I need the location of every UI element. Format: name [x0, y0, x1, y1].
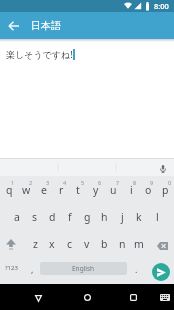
button[interactable]: [153, 237, 171, 255]
button[interactable]: p: [156, 181, 174, 199]
button[interactable]: h: [95, 208, 113, 226]
staticText: i: [130, 183, 133, 197]
button[interactable]: d: [43, 208, 61, 226]
button[interactable]: o: [139, 181, 157, 199]
staticText: ?123: [5, 264, 18, 272]
button[interactable]: u: [104, 181, 122, 199]
staticText: s: [32, 210, 38, 224]
staticText: 5: [81, 179, 85, 186]
staticText: 4: [63, 179, 67, 186]
staticText: .: [135, 263, 138, 275]
staticText: k: [136, 210, 142, 224]
button[interactable]: r: [52, 181, 70, 199]
button[interactable]: f: [61, 208, 79, 226]
button[interactable]: 9: [143, 173, 161, 191]
staticText: e: [41, 183, 47, 197]
button[interactable]: a: [8, 208, 26, 226]
staticText: l: [156, 210, 159, 224]
button[interactable]: [124, 288, 142, 306]
button[interactable]: [152, 263, 170, 281]
button[interactable]: t: [69, 181, 87, 199]
staticText: w: [22, 183, 31, 197]
staticText: 6: [98, 179, 102, 186]
staticText: j: [121, 210, 124, 224]
staticText: q: [6, 183, 13, 197]
staticText: d: [49, 210, 56, 224]
button[interactable]: k: [130, 208, 148, 226]
button[interactable]: c: [61, 235, 79, 253]
button[interactable]: [78, 288, 96, 306]
button[interactable]: q: [0, 181, 18, 199]
staticText: p: [162, 183, 169, 197]
button[interactable]: b: [95, 235, 113, 253]
staticText: u: [110, 183, 117, 197]
staticText: m: [134, 237, 144, 251]
staticText: 楽しそうですね!: [6, 48, 73, 60]
staticText: x: [49, 237, 55, 251]
button[interactable]: 8: [126, 173, 144, 191]
staticText: r: [59, 183, 64, 197]
staticText: o: [145, 183, 152, 197]
staticText: 7: [116, 179, 120, 186]
button[interactable]: i: [122, 181, 140, 199]
staticText: g: [84, 210, 91, 224]
staticText: 9: [150, 179, 154, 186]
staticText: 3: [46, 179, 50, 186]
button[interactable]: l: [148, 208, 166, 226]
button[interactable]: e: [35, 181, 53, 199]
staticText: c: [67, 237, 73, 251]
staticText: 1: [11, 179, 15, 186]
button[interactable]: 2: [22, 173, 40, 191]
button[interactable]: ?123: [2, 259, 20, 277]
button[interactable]: 3: [39, 173, 57, 191]
staticText: 0: [168, 179, 172, 186]
staticText: t: [76, 183, 80, 197]
staticText: f: [68, 210, 72, 224]
button[interactable]: 7: [109, 173, 127, 191]
button[interactable]: x: [43, 235, 61, 253]
button[interactable]: .: [127, 260, 145, 278]
button[interactable]: w: [17, 181, 35, 199]
staticText: v: [84, 237, 90, 251]
button[interactable]: j: [113, 208, 131, 226]
button[interactable]: [2, 235, 20, 253]
button[interactable]: 4: [56, 173, 74, 191]
button[interactable]: z: [26, 235, 44, 253]
button[interactable]: g: [78, 208, 96, 226]
button[interactable]: [0, 12, 27, 39]
staticText: ,: [31, 263, 34, 275]
button[interactable]: 0: [161, 173, 174, 191]
button[interactable]: v: [78, 235, 96, 253]
staticText: h: [101, 210, 108, 224]
button[interactable]: 6: [91, 173, 109, 191]
staticText: 8: [133, 179, 137, 186]
button[interactable]: 1: [4, 173, 22, 191]
button[interactable]: English: [40, 262, 127, 275]
staticText: 2: [29, 179, 33, 186]
staticText: z: [33, 237, 38, 251]
staticText: n: [119, 237, 126, 251]
staticText: 8:00: [154, 1, 169, 11]
button[interactable]: ,: [23, 260, 41, 278]
staticText: b: [101, 237, 108, 251]
button[interactable]: m: [130, 235, 148, 253]
button[interactable]: s: [26, 208, 44, 226]
button[interactable]: [157, 163, 169, 175]
staticText: 日本語: [31, 19, 61, 32]
button[interactable]: y: [87, 181, 105, 199]
staticText: a: [14, 210, 20, 224]
button[interactable]: 5: [74, 173, 92, 191]
button[interactable]: [29, 289, 47, 307]
button[interactable]: [158, 290, 172, 304]
button[interactable]: n: [113, 235, 131, 253]
staticText: y: [93, 183, 99, 197]
staticText: English: [72, 264, 95, 273]
